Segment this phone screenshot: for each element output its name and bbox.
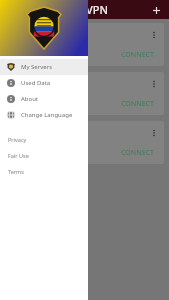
button[interactable]: Bogota Server: [5, 23, 164, 66]
button[interactable]: More options: [148, 29, 160, 41]
staticText: Medellin Server: [13, 79, 72, 90]
staticText: VPN: [86, 2, 109, 17]
staticText: Used Data: [21, 79, 51, 87]
staticText: My Servers: [21, 63, 53, 71]
button[interactable]: Used Data: [0, 75, 88, 91]
button[interactable]: My Servers: [0, 59, 88, 75]
staticText: Bogota Server: [13, 30, 67, 41]
button[interactable]: Medellin Server: [5, 72, 164, 115]
button[interactable]: CONNECT: [119, 49, 156, 61]
staticText: About: [21, 95, 39, 103]
button[interactable]: Fair Use: [0, 147, 88, 163]
button[interactable]: CONNECT: [119, 98, 156, 110]
button[interactable]: CONNECT: [119, 147, 156, 159]
button[interactable]: Change Language: [0, 107, 88, 123]
button[interactable]: Add server: [149, 3, 163, 17]
staticText: Privacy: [8, 136, 27, 143]
staticText: Terms: [8, 168, 24, 175]
staticText: CONNECT: [121, 99, 154, 109]
button[interactable]: More options: [148, 78, 160, 90]
button[interactable]: Terms: [0, 163, 88, 179]
staticText: CONNECT: [121, 148, 154, 158]
button[interactable]: About: [0, 91, 88, 107]
button[interactable]: More options: [148, 127, 160, 139]
staticText: Fair Use: [8, 152, 29, 159]
staticText: Change Language: [21, 111, 73, 119]
staticText: CONNECT: [121, 50, 154, 60]
button[interactable]: Cali Server: [5, 121, 164, 164]
button[interactable]: Privacy: [0, 131, 88, 147]
